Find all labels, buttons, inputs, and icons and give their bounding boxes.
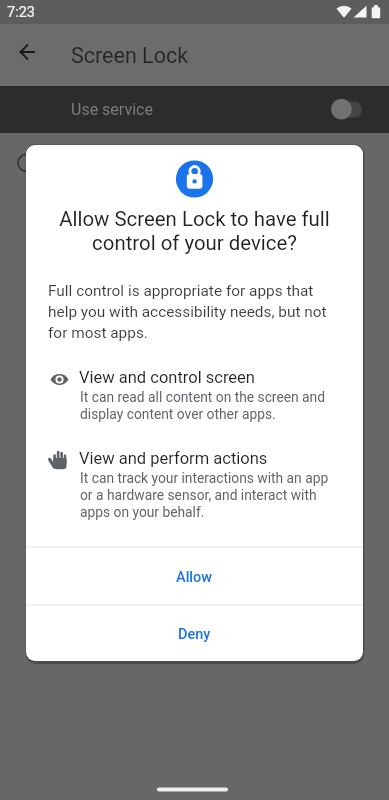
staticText: Allow	[176, 569, 213, 586]
staticText: View and perform actions	[79, 449, 268, 468]
button[interactable]	[12, 37, 42, 67]
staticText: Screen Lock	[71, 43, 189, 68]
staticText: Full control is appropriate for apps tha…	[48, 282, 327, 342]
staticText: Allow Screen Lock to have full control o…	[46, 207, 343, 661]
staticText: It can read all content on the screen an…	[80, 389, 325, 422]
button[interactable]	[0, 86, 389, 133]
staticText: 7:23	[7, 4, 35, 21]
button[interactable]: Deny	[26, 606, 363, 661]
staticText: Deny	[178, 626, 211, 643]
staticText: View and control screen	[79, 368, 255, 387]
staticText: It can track your interactions with an a…	[80, 470, 329, 520]
button[interactable]: Allow	[26, 548, 363, 606]
staticText: Use service	[71, 100, 153, 119]
